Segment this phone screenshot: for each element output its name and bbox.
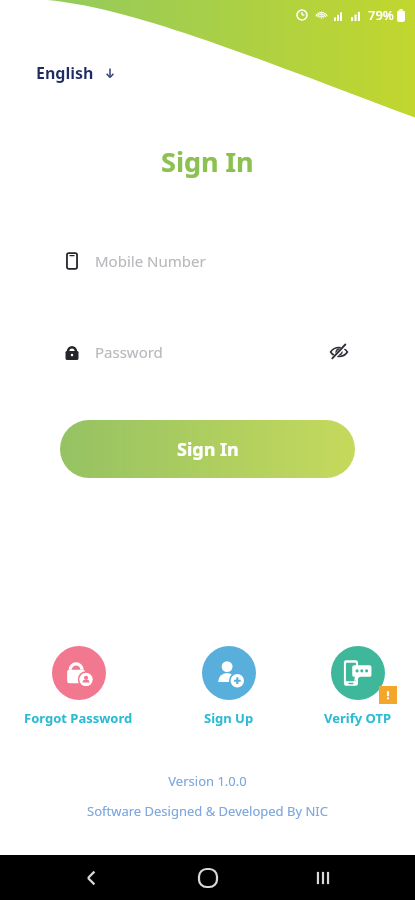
staticText: Software Designed & Developed By NIC xyxy=(87,802,328,820)
staticText: Sign In xyxy=(177,437,239,462)
button[interactable]: Password xyxy=(45,326,370,378)
staticText: English xyxy=(36,62,94,84)
button[interactable]: Back xyxy=(68,855,116,900)
staticText: Forgot Password xyxy=(24,709,133,727)
button[interactable]: Recent apps xyxy=(299,855,347,900)
button[interactable]: Sign In xyxy=(60,420,355,478)
button[interactable]: Show password xyxy=(326,339,352,365)
button[interactable]: Sign Up xyxy=(196,646,262,727)
staticText: Password xyxy=(95,342,163,362)
button[interactable]: Home xyxy=(184,855,232,900)
staticText: Verify OTP xyxy=(324,709,391,727)
staticText: Sign In xyxy=(161,143,254,180)
button[interactable]: Forgot Password xyxy=(18,646,139,727)
staticText: Version 1.0.0 xyxy=(168,772,247,790)
staticText: Sign Up xyxy=(204,709,254,727)
button[interactable]: English xyxy=(32,58,120,88)
button[interactable]: Verify OTP xyxy=(318,646,397,727)
button[interactable]: Mobile Number xyxy=(45,235,370,287)
staticText: 79% xyxy=(368,6,394,24)
staticText: Mobile Number xyxy=(95,251,206,271)
